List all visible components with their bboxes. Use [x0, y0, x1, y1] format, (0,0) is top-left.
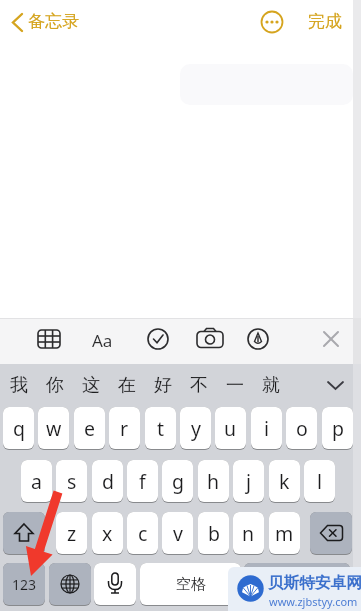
staticText: 在 — [118, 374, 136, 397]
button[interactable]: v — [162, 512, 193, 555]
button[interactable] — [244, 325, 272, 353]
staticText: u — [224, 415, 237, 442]
button[interactable]: k — [269, 460, 300, 503]
staticText: z — [67, 520, 77, 547]
staticText: 好 — [154, 374, 172, 397]
button[interactable]: h — [198, 460, 229, 503]
button[interactable]: 123 — [3, 563, 45, 606]
button[interactable] — [94, 563, 136, 606]
button[interactable]: 完成 — [300, 6, 350, 36]
button[interactable]: 一 — [218, 366, 251, 404]
button[interactable]: 就 — [254, 366, 287, 404]
button[interactable]: 我 — [2, 366, 35, 404]
staticText: p — [332, 415, 344, 442]
button[interactable]: z — [56, 512, 87, 555]
staticText: e — [84, 415, 95, 442]
button[interactable]: 你 — [38, 366, 71, 404]
button[interactable]: 贝斯特安卓网 — [228, 567, 361, 611]
staticText: 我 — [10, 374, 28, 397]
button[interactable]: d — [92, 460, 123, 503]
staticText: w — [46, 415, 62, 442]
button[interactable]: 好 — [146, 366, 179, 404]
staticText: i — [264, 415, 270, 442]
staticText: Aa — [92, 329, 113, 352]
button[interactable]: i — [251, 407, 282, 450]
button[interactable] — [244, 563, 350, 606]
staticText: d — [102, 468, 114, 495]
staticText: f — [139, 468, 146, 495]
button[interactable] — [144, 325, 172, 353]
button[interactable] — [318, 366, 353, 404]
staticText: g — [172, 468, 184, 495]
button[interactable]: g — [162, 460, 193, 503]
staticText: x — [102, 520, 113, 547]
button[interactable] — [310, 512, 352, 555]
staticText: 123 — [12, 575, 37, 594]
staticText: q — [13, 415, 25, 442]
button[interactable]: 这 — [74, 366, 107, 404]
button[interactable]: Aa — [87, 326, 117, 354]
button[interactable]: 在 — [110, 366, 143, 404]
button[interactable]: f — [127, 460, 158, 503]
staticText: 这 — [82, 374, 100, 397]
button[interactable]: m — [269, 512, 300, 555]
staticText: c — [138, 520, 148, 547]
button[interactable]: j — [233, 460, 264, 503]
staticText: t — [157, 415, 165, 442]
staticText: 就 — [262, 374, 280, 397]
button[interactable]: b — [198, 512, 229, 555]
button[interactable] — [35, 325, 63, 353]
staticText: 不 — [190, 374, 208, 397]
button[interactable]: 空格 — [140, 563, 241, 606]
staticText: 空格 — [176, 575, 206, 594]
button[interactable]: a — [21, 460, 52, 503]
button[interactable] — [258, 8, 286, 36]
button[interactable]: t — [145, 407, 176, 450]
button[interactable] — [196, 325, 224, 353]
button[interactable]: x — [92, 512, 123, 555]
staticText: m — [275, 520, 294, 547]
staticText: n — [242, 520, 255, 547]
button[interactable] — [317, 325, 345, 353]
button[interactable]: 不 — [182, 366, 215, 404]
button[interactable] — [3, 512, 45, 555]
button[interactable]: r — [109, 407, 140, 450]
button[interactable]: n — [233, 512, 264, 555]
button[interactable]: p — [322, 407, 353, 450]
button[interactable]: y — [180, 407, 211, 450]
staticText: 你 — [46, 374, 64, 397]
staticText: k — [279, 468, 290, 495]
button[interactable] — [49, 563, 91, 606]
button[interactable]: o — [286, 407, 317, 450]
staticText: o — [296, 415, 308, 442]
button[interactable]: c — [127, 512, 158, 555]
staticText: r — [120, 415, 129, 442]
staticText: 贝斯特安卓网 — [268, 573, 361, 593]
button[interactable]: u — [215, 407, 246, 450]
staticText: a — [31, 468, 42, 495]
staticText: l — [317, 468, 323, 495]
staticText: h — [207, 468, 220, 495]
staticText: 一 — [226, 374, 244, 397]
staticText: s — [67, 468, 77, 495]
button[interactable]: q — [3, 407, 34, 450]
staticText: y — [191, 415, 201, 442]
button[interactable]: e — [74, 407, 105, 450]
staticText: 完成 — [308, 11, 342, 32]
staticText: b — [208, 520, 220, 547]
button[interactable]: l — [304, 460, 335, 503]
staticText: 备忘录 — [28, 11, 79, 32]
staticText: j — [246, 468, 252, 495]
staticText: v — [173, 520, 183, 547]
staticText: www.zjbstyy.com — [269, 594, 358, 609]
button[interactable]: w — [38, 407, 69, 450]
button[interactable]: s — [56, 460, 87, 503]
button[interactable]: 备忘录 — [8, 6, 98, 38]
